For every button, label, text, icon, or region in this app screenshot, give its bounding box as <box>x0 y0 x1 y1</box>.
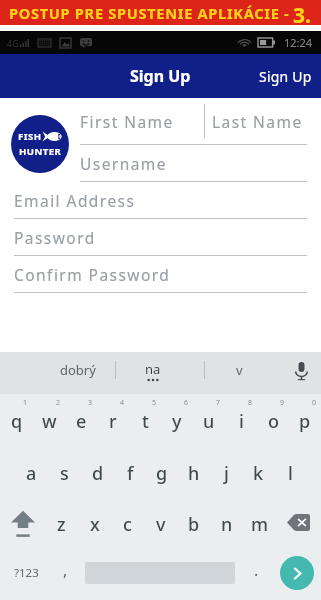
staticText: x <box>90 512 100 537</box>
staticText: 8 <box>248 398 253 408</box>
button[interactable]: First Name <box>80 98 204 144</box>
staticText: Last Name <box>212 111 303 132</box>
staticText: 2 <box>56 398 61 408</box>
staticText: POSTUP PRE SPUSTENIE APLIKÁCIE - <box>9 3 290 23</box>
staticText: s <box>60 461 69 486</box>
staticText: r <box>109 409 117 434</box>
button[interactable]: Sign Up <box>250 54 321 98</box>
staticText: 6 <box>184 398 189 408</box>
staticText: b <box>188 512 200 537</box>
button[interactable]: l <box>274 445 306 498</box>
staticText: e <box>76 409 87 434</box>
button[interactable]: u <box>193 394 225 445</box>
button[interactable]: dobrý <box>0 352 115 394</box>
button[interactable]: k <box>242 445 274 498</box>
staticText: a <box>26 461 37 486</box>
staticText: v <box>236 361 243 379</box>
staticText: n <box>221 512 233 537</box>
staticText: 1 <box>23 398 28 408</box>
staticText: q <box>11 409 23 434</box>
button[interactable]: Shift <box>0 498 45 546</box>
button[interactable]: d <box>81 445 114 498</box>
staticText: d <box>92 461 104 486</box>
staticText: FISH <box>18 130 42 143</box>
button[interactable]: Last Name <box>212 98 307 144</box>
staticText: k <box>253 461 264 486</box>
staticText: f <box>127 461 134 486</box>
staticText: t <box>142 409 149 434</box>
button[interactable]: q <box>0 394 33 445</box>
staticText: 4G <box>7 37 19 49</box>
staticText: HUNTER <box>19 145 62 158</box>
button[interactable]: v <box>205 352 281 394</box>
button[interactable]: Backspace <box>276 498 321 546</box>
button[interactable]: g <box>146 445 178 498</box>
button[interactable]: n <box>210 498 243 546</box>
staticText: Username <box>80 153 168 174</box>
button[interactable]: a <box>15 445 48 498</box>
staticText: 3. <box>293 1 311 26</box>
staticText: na <box>145 360 161 378</box>
button[interactable]: Voice input <box>281 352 321 394</box>
staticText: 0 <box>312 398 317 408</box>
button[interactable]: p <box>289 394 321 445</box>
button[interactable]: Username <box>80 145 307 181</box>
staticText: Email Address <box>14 190 136 211</box>
button[interactable]: y <box>161 394 193 445</box>
button[interactable]: f <box>114 445 146 498</box>
button[interactable]: b <box>177 498 210 546</box>
button[interactable]: ?123 <box>0 546 52 600</box>
button[interactable]: o <box>257 394 289 445</box>
staticText: Confirm Password <box>14 264 171 285</box>
button[interactable]: Next <box>280 556 314 590</box>
staticText: y <box>172 409 182 434</box>
staticText: First Name <box>80 111 174 132</box>
button[interactable]: , <box>52 546 78 600</box>
staticText: 12:24 <box>284 35 313 50</box>
staticText: i <box>239 409 244 434</box>
staticText: u <box>203 409 215 434</box>
staticText: 9 <box>280 398 285 408</box>
button[interactable]: z <box>45 498 78 546</box>
staticText: p <box>299 409 311 434</box>
button[interactable]: c <box>111 498 144 546</box>
button[interactable]: Password <box>14 219 307 255</box>
button[interactable]: e <box>65 394 97 445</box>
button[interactable]: i <box>225 394 257 445</box>
button[interactable]: m <box>243 498 276 546</box>
button[interactable]: j <box>210 445 242 498</box>
staticText: j <box>224 461 229 486</box>
staticText: 7 <box>216 398 221 408</box>
staticText: z <box>57 512 66 537</box>
staticText: Sign Up <box>259 67 312 86</box>
staticText: Password <box>14 227 96 248</box>
button[interactable]: t <box>129 394 161 445</box>
staticText: . <box>254 559 259 581</box>
staticText: c <box>123 512 132 537</box>
staticText: v <box>156 512 166 537</box>
button[interactable]: na <box>116 352 204 394</box>
staticText: w <box>42 409 57 434</box>
button[interactable]: x <box>78 498 111 546</box>
staticText: l <box>288 461 293 486</box>
button[interactable]: Confirm Password <box>14 256 307 292</box>
button[interactable]: v <box>144 498 177 546</box>
staticText: 4 <box>120 398 125 408</box>
staticText: o <box>268 409 279 434</box>
staticText: g <box>156 461 168 486</box>
button[interactable]: w <box>33 394 65 445</box>
staticText: m <box>251 512 269 537</box>
staticText: 3 <box>88 398 93 408</box>
staticText: ?123 <box>14 565 39 581</box>
button[interactable]: h <box>178 445 210 498</box>
button[interactable]: Email Address <box>14 182 307 218</box>
button[interactable]: . <box>243 546 269 600</box>
staticText: Sign Up <box>130 65 191 87</box>
staticText: h <box>188 461 200 486</box>
button[interactable]: s <box>48 445 81 498</box>
staticText: , <box>63 559 68 581</box>
button[interactable]: r <box>97 394 129 445</box>
staticText: dobrý <box>60 361 96 379</box>
button[interactable]: Fish Hunter logo <box>11 115 69 173</box>
